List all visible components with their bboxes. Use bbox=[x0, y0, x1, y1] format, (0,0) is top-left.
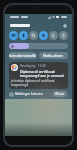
button[interactable]: Do not disturb bbox=[29, 31, 38, 40]
button[interactable]: Beveiliging bbox=[9, 62, 68, 89]
staticText: 12:45 bbox=[38, 64, 46, 68]
button[interactable]: Wi-Fi bbox=[9, 31, 18, 40]
staticText: Media-uitvoer bbox=[43, 54, 64, 58]
staticText: Diploma of certificaat toegevoegd aan je… bbox=[20, 69, 66, 78]
button[interactable]: Wissen bbox=[53, 91, 67, 97]
staticText: Je hebt je diploma of certificaat toegev… bbox=[11, 79, 66, 87]
staticText: Meldingen beheren bbox=[15, 92, 43, 96]
button[interactable]: Settings bbox=[62, 23, 67, 28]
button[interactable]: Meldingen beheren bbox=[10, 92, 43, 96]
staticText: Wissen bbox=[55, 92, 65, 96]
button[interactable]: Battery saver bbox=[59, 31, 68, 40]
button[interactable]: Gebruikersinstelling bbox=[9, 52, 37, 59]
button[interactable]: Flashlight bbox=[39, 31, 48, 40]
staticText: Gebruikersinstelling bbox=[9, 54, 37, 58]
button[interactable]: Auto-rotate bbox=[49, 31, 58, 40]
button[interactable]: Media-uitvoer bbox=[39, 52, 68, 59]
button[interactable]: Brightness bbox=[9, 43, 68, 49]
staticText: Beveiliging bbox=[20, 64, 36, 68]
button[interactable]: Bluetooth bbox=[19, 31, 28, 40]
